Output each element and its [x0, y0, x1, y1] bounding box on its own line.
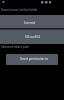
staticText: SD card 64: [25, 35, 40, 39]
button[interactable]: Grant permission to: [6, 54, 58, 65]
button[interactable]: SD card 64: [0, 30, 64, 44]
staticText: Grant permission to: [20, 57, 49, 61]
staticText: Selected folder path: [1, 45, 30, 49]
button[interactable]: Internal: [0, 15, 64, 29]
staticText: Grant access to this folder: [1, 8, 38, 12]
staticText: Internal: [24, 21, 36, 25]
other: Status bar: [0, 0, 64, 5]
